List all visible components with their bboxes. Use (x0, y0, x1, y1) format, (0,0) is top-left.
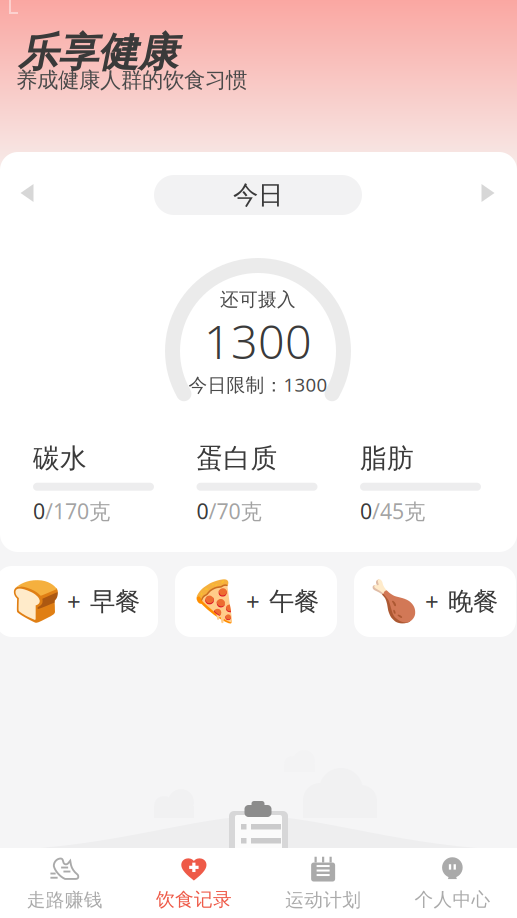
staticText: 0 (33, 497, 45, 525)
staticText: /70克 (208, 497, 261, 525)
staticText: 0 (360, 497, 372, 525)
staticText: 个人中心 (414, 888, 490, 911)
staticText: 蛋白质 (196, 442, 277, 475)
staticText: + (425, 586, 439, 617)
staticText: 饮食记录 (156, 888, 232, 911)
staticText: 走路赚钱 (27, 888, 103, 911)
staticText: 1300 (204, 310, 312, 372)
staticText: + (246, 586, 260, 617)
button[interactable]: 今日 (154, 175, 362, 215)
staticText: 早餐 (90, 586, 140, 617)
staticText: 0 (196, 497, 208, 525)
staticText: 🍗 (369, 579, 419, 624)
button[interactable]: 上一天 (4, 173, 50, 213)
staticText: 脂肪 (360, 442, 414, 475)
staticText: 碳水 (33, 442, 87, 475)
button[interactable]: 走路赚钱 (0, 848, 129, 918)
staticText: /45克 (372, 497, 425, 525)
button[interactable]: 下一天 (465, 173, 511, 213)
staticText: + (67, 586, 81, 617)
staticText: 今日 (233, 179, 283, 210)
button[interactable]: 🍗 (354, 566, 516, 637)
button[interactable]: 🍕 (175, 566, 337, 637)
button[interactable]: 🍞 (0, 566, 158, 637)
staticText: 午餐 (269, 586, 319, 617)
staticText: 🍞 (11, 579, 61, 624)
button[interactable]: 个人中心 (388, 848, 517, 918)
staticText: /170克 (45, 497, 110, 525)
staticText: 晚餐 (448, 586, 498, 617)
staticText: 今日限制：1300 (188, 372, 327, 397)
staticText: 还可摄入 (220, 288, 296, 311)
staticText: 运动计划 (285, 888, 361, 911)
staticText: 养成健康人群的饮食习惯 (16, 67, 247, 93)
button[interactable]: 饮食记录 (129, 848, 258, 918)
staticText: 🍕 (190, 579, 240, 624)
button[interactable]: 运动计划 (258, 848, 388, 918)
staticText: 乐享健康 (18, 28, 178, 77)
